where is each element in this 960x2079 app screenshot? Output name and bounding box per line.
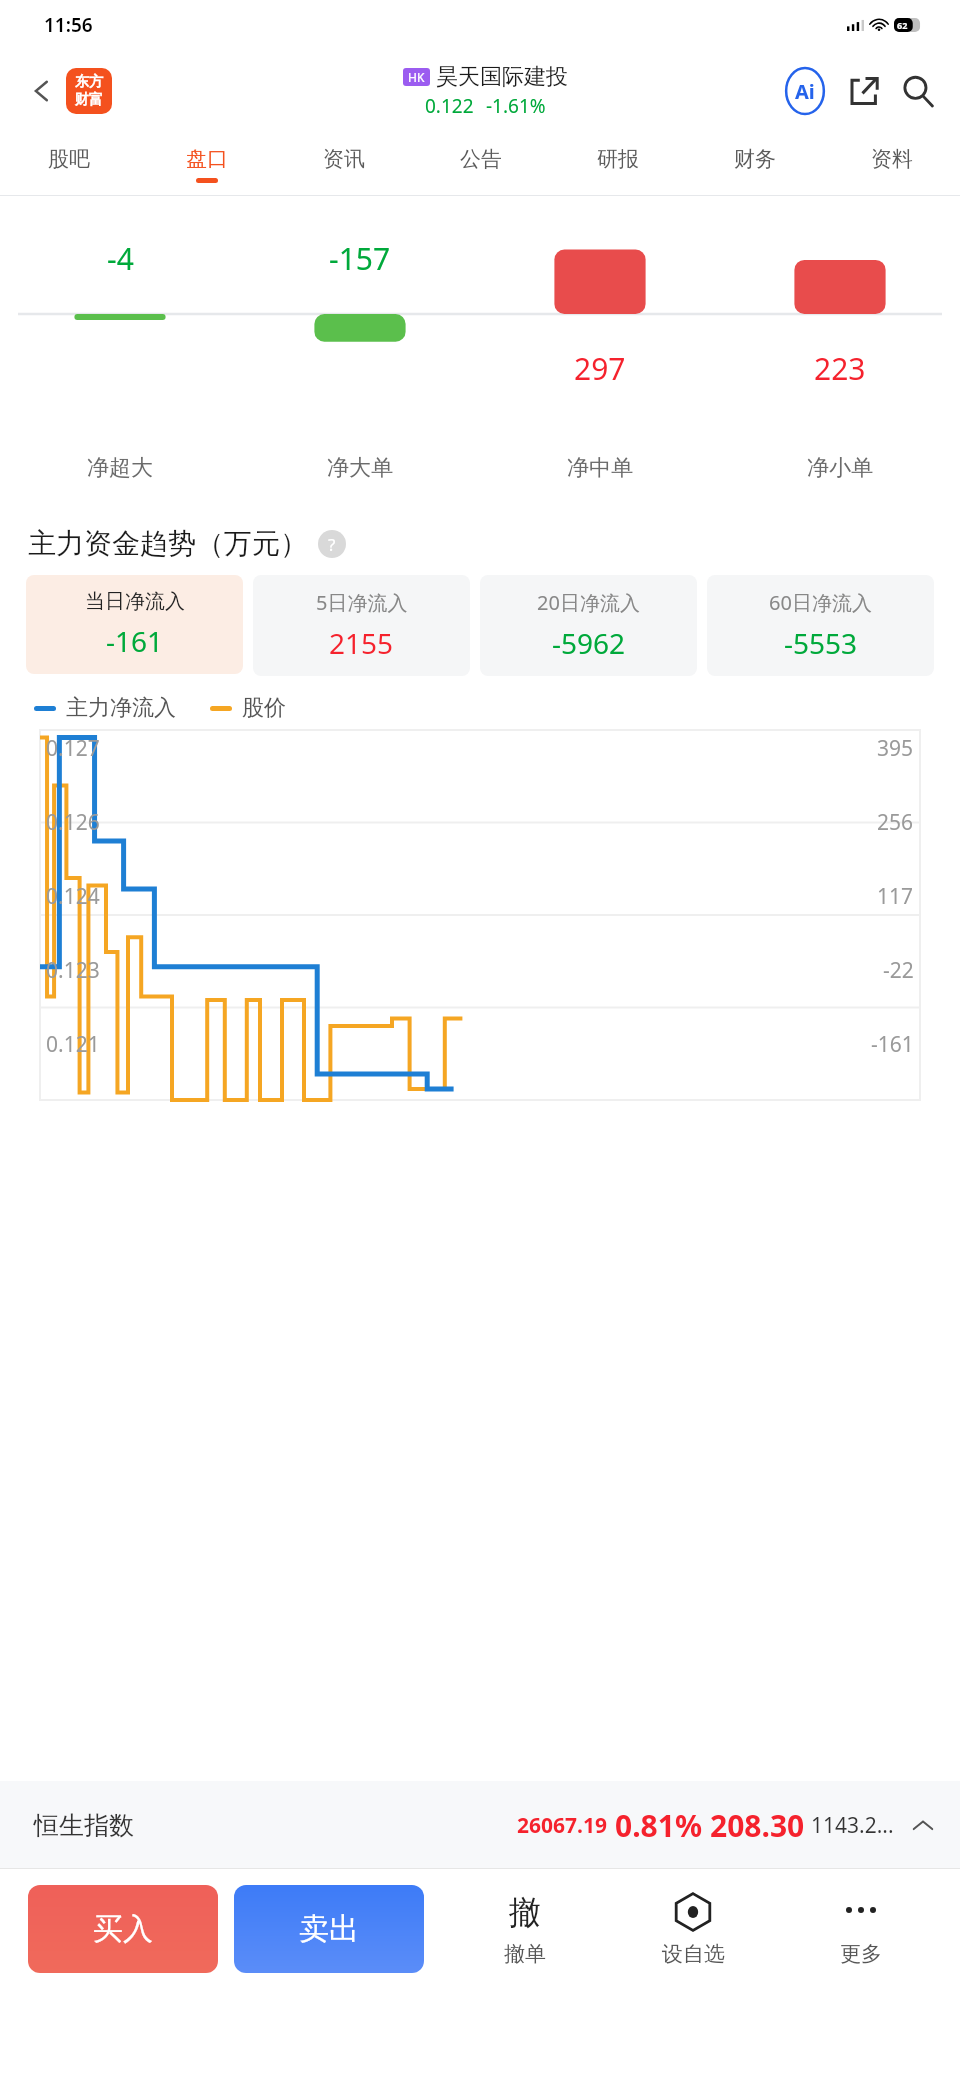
button[interactable]: 买入 [28,1885,218,1973]
staticText: 恒生指数 [34,1810,134,1841]
button[interactable]: 东方 [66,68,112,114]
staticText: 0.127 [46,734,100,763]
staticText: 昊天国际建投 [436,63,568,91]
staticText: 0.121 [46,1030,100,1059]
button[interactable]: 主力资金趋势（万元） [28,526,960,561]
staticText: 223 [814,348,866,389]
staticText: 更多 [840,1941,882,1967]
staticText: -161 [106,622,164,660]
staticText: 公告 [460,146,502,172]
staticText: -157 [329,238,391,279]
staticText: 盘口 [186,146,228,172]
staticText: 设自选 [662,1941,725,1967]
button[interactable]: 当日净流入 [26,575,243,674]
staticText: 主力净流入 [66,694,176,722]
staticText: 财务 [734,146,776,172]
staticText: 研报 [597,146,639,172]
staticText: 撤 [509,1892,541,1932]
button[interactable]: 股吧 [0,132,138,196]
staticText: 0.126 [46,808,100,837]
staticText: 60日净流入 [769,589,872,616]
button[interactable]: AI [780,66,830,116]
staticText: -161 [871,1030,914,1059]
staticText: 0.122 [425,93,474,119]
button[interactable]: 恒生指数 [0,1781,960,1869]
staticText: -5962 [552,624,626,662]
staticText: 2155 [329,624,394,662]
button[interactable]: 资料 [823,132,960,196]
staticText: 0.81% [615,1805,702,1846]
button[interactable]: Back [20,69,64,113]
staticText: 当日净流入 [85,589,185,614]
staticText: 资讯 [323,146,365,172]
staticText: 股价 [242,694,286,722]
button[interactable]: 20日净流入 [480,575,697,676]
button[interactable]: 盘口 [138,132,275,196]
button[interactable]: 卖出 [234,1885,424,1973]
button[interactable]: 资讯 [275,132,412,196]
button[interactable]: 5日净流入 [253,575,470,676]
staticText: -4 [107,238,134,279]
button[interactable]: Search [894,67,942,115]
staticText: ? [328,533,336,556]
button[interactable]: Share [840,67,888,115]
staticText: 297 [574,348,626,389]
staticText: 净大单 [327,454,393,482]
staticText: 主力资金趋势（万元） [28,526,308,561]
button[interactable]: 财务 [686,132,823,196]
button[interactable]: 研报 [549,132,686,196]
staticText: HK [408,69,425,85]
staticText: 东方 [75,73,103,91]
staticText: 卖出 [299,1910,359,1948]
staticText: 26067.19 [517,1811,607,1840]
staticText: 208.30 [710,1805,805,1846]
staticText: 1143.2... [811,1811,894,1840]
staticText: 20日净流入 [537,589,640,616]
button[interactable]: 更多 [782,1885,940,1967]
staticText: 62 [897,19,908,31]
staticText: 11:56 [44,12,93,38]
staticText: -1.61% [486,93,546,119]
staticText: 买入 [93,1910,153,1948]
staticText: 资料 [871,146,913,172]
staticText: 256 [877,808,914,837]
staticText: 股吧 [48,146,90,172]
button[interactable]: 撤 [446,1885,604,1967]
button[interactable]: 公告 [412,132,549,196]
staticText: 5日净流入 [316,589,408,616]
staticText: 净小单 [807,454,873,482]
staticText: 净超大 [87,454,153,482]
staticText: 0.124 [46,882,100,911]
button[interactable]: 设自选 [614,1885,772,1967]
staticText: 0.123 [46,956,100,985]
staticText: -22 [883,956,914,985]
staticText: Ai [795,78,815,105]
staticText: 117 [877,882,914,911]
staticText: 撤单 [504,1941,546,1967]
staticText: 净中单 [567,454,633,482]
staticText: 财富 [75,91,103,109]
staticText: -5553 [784,624,858,662]
staticText: 395 [877,734,914,763]
button[interactable]: 60日净流入 [707,575,934,676]
